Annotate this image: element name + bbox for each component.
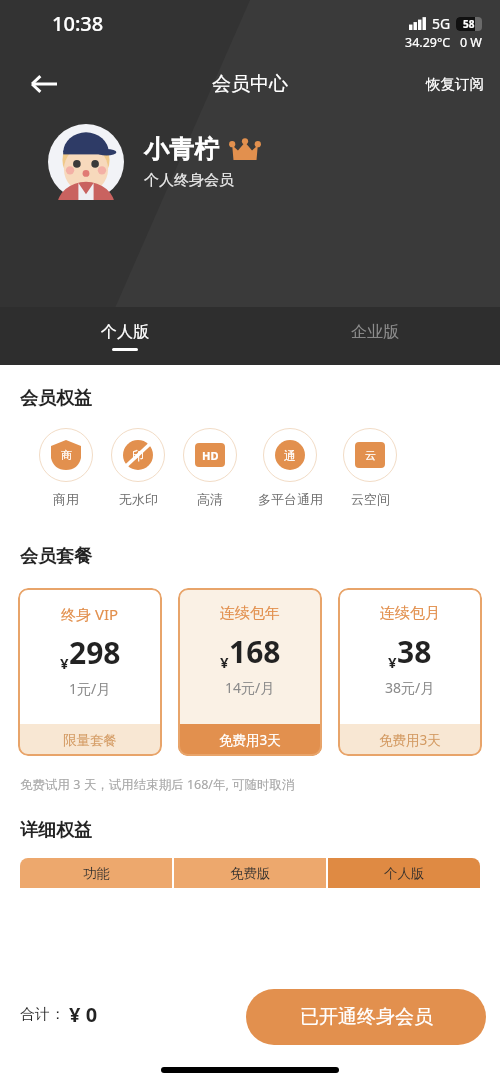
staticText: 高清	[197, 491, 223, 507]
staticText: 个人版	[384, 865, 425, 882]
staticText: ¥	[388, 652, 397, 672]
staticText: 限量套餐	[63, 732, 117, 749]
button[interactable]: 终身 VIP	[18, 588, 162, 756]
staticText: 小青柠	[144, 134, 219, 165]
staticText: 免费版	[230, 865, 271, 882]
staticText: 1元/月	[69, 679, 111, 698]
button[interactable]: 连续包年	[178, 588, 322, 756]
staticText: 会员套餐	[20, 545, 92, 568]
button[interactable]: HD	[174, 428, 246, 507]
staticText: 会员中心	[212, 72, 288, 96]
staticText: 会员权益	[20, 387, 92, 410]
staticText: ¥ 0	[69, 1001, 98, 1028]
button[interactable]: 商	[30, 428, 102, 507]
button[interactable]: 个人版	[0, 307, 250, 365]
button[interactable]: 恢复订阅	[410, 67, 500, 101]
staticText: 详细权益	[20, 819, 92, 842]
staticText: 功能	[83, 865, 110, 882]
button[interactable]: 已开通终身会员	[246, 989, 486, 1045]
button[interactable]: 个人版	[328, 858, 480, 888]
staticText: 10:38	[52, 10, 104, 37]
staticText: 通	[284, 448, 296, 463]
button[interactable]: 通	[246, 428, 334, 507]
staticText: 14元/月	[225, 678, 275, 697]
staticText: 个人终身会员	[144, 171, 234, 190]
staticText: ¥	[60, 653, 69, 673]
staticText: 终身 VIP	[61, 604, 119, 624]
staticText: 恢复订阅	[426, 75, 484, 93]
button[interactable]: 云	[334, 428, 406, 507]
button[interactable]: 连续包月	[338, 588, 482, 756]
staticText: HD	[202, 448, 219, 463]
staticText: 38	[397, 631, 432, 672]
staticText: 企业版	[351, 322, 399, 342]
button[interactable]: 免费版	[174, 858, 326, 888]
staticText: 商	[61, 448, 72, 462]
staticText: 298	[69, 632, 121, 673]
staticText: 云空间	[351, 491, 390, 507]
button[interactable]: 小青柠	[48, 124, 500, 200]
staticText: 商用	[53, 491, 79, 507]
button[interactable]: Back	[22, 62, 66, 106]
button[interactable]: 功能	[20, 858, 172, 888]
staticText: ¥	[220, 652, 229, 672]
button[interactable]: 企业版	[250, 307, 500, 365]
staticText: 多平台通用	[258, 491, 323, 507]
staticText: 已开通终身会员	[300, 1005, 433, 1029]
staticText: 5G	[432, 14, 451, 33]
staticText: 合计：	[20, 1005, 65, 1024]
staticText: 无水印	[119, 491, 158, 507]
staticText: 连续包月	[380, 604, 440, 623]
staticText: 34.29°C 0 W	[405, 34, 482, 51]
staticText: 个人版	[101, 322, 149, 342]
staticText: 58	[463, 17, 475, 31]
staticText: 免费用3天	[379, 731, 441, 749]
button[interactable]: 印	[102, 428, 174, 507]
staticText: 免费试用 3 天，试用结束期后 168/年, 可随时取消	[20, 776, 295, 793]
staticText: 连续包年	[220, 604, 280, 623]
staticText: 38元/月	[385, 678, 435, 697]
staticText: 云	[365, 448, 376, 462]
staticText: 印	[132, 448, 144, 463]
staticText: 免费用3天	[219, 731, 281, 749]
staticText: 168	[229, 631, 281, 672]
